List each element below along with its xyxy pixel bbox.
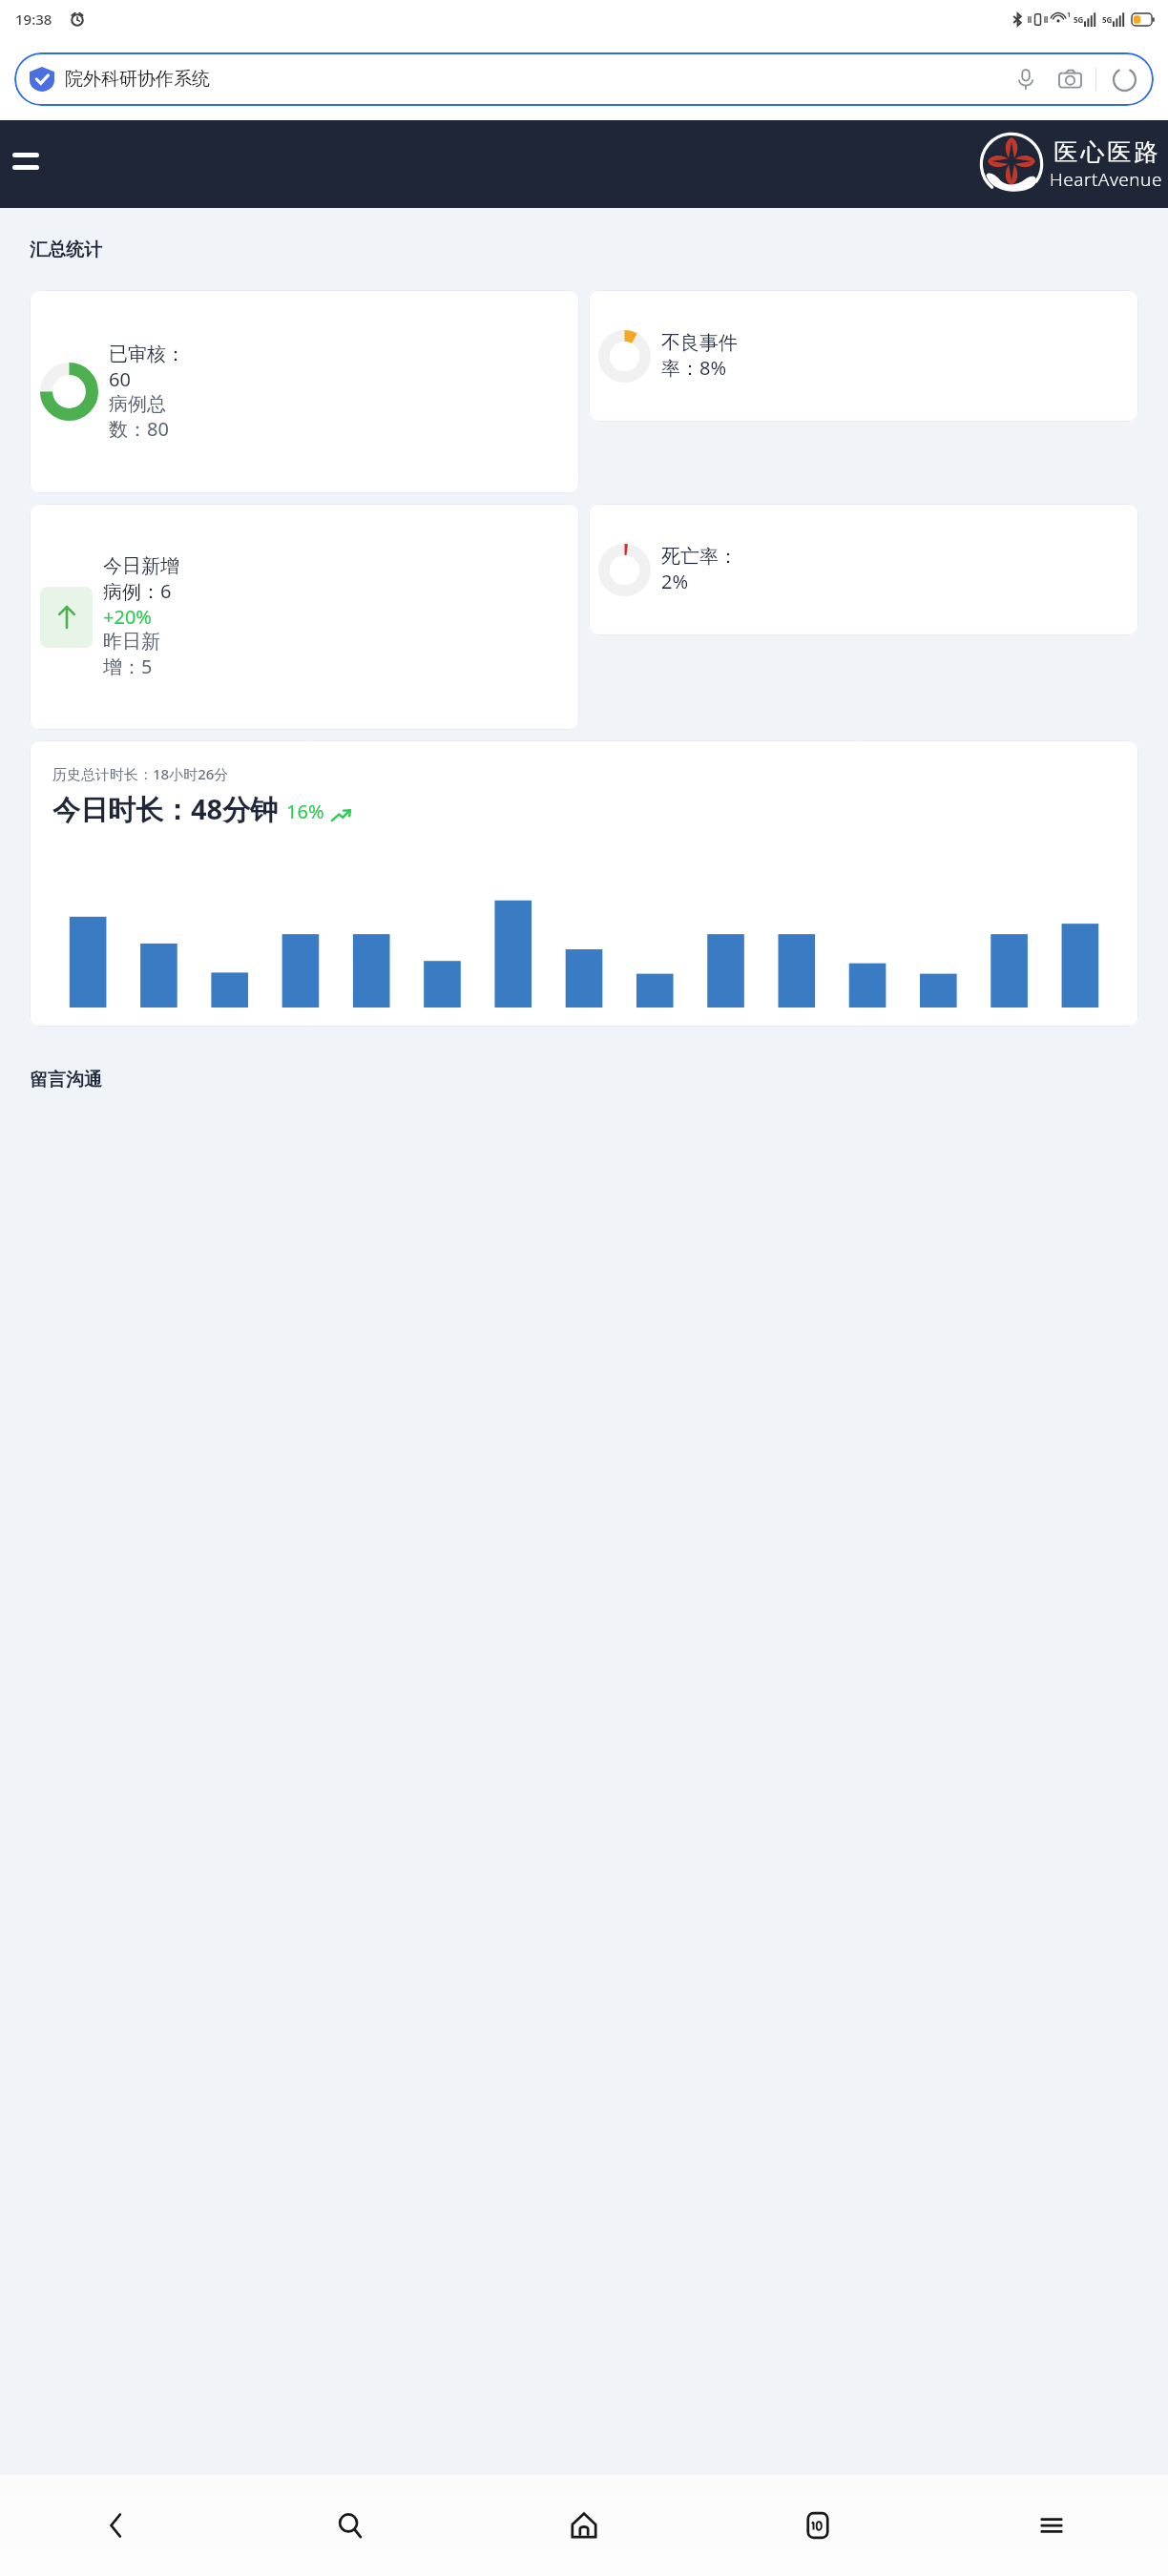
button[interactable]: Menu	[12, 149, 43, 179]
button[interactable]: 不良事件	[589, 290, 1138, 422]
staticText: 留言沟通	[30, 1069, 102, 1091]
staticText: 16%	[286, 799, 324, 824]
staticText: 5G	[1102, 14, 1113, 25]
staticText: 历史总计时长：18小时26分	[52, 764, 229, 783]
staticText: 2%	[661, 569, 689, 594]
button[interactable]: 院外科研协作系统	[14, 52, 1154, 106]
staticText: 增：5	[103, 654, 153, 679]
button[interactable]: Back	[0, 2475, 233, 2576]
staticText: 1	[1067, 10, 1072, 20]
button[interactable]: 今日新增	[30, 504, 579, 730]
staticText: 今日时长：48分钟	[52, 790, 279, 828]
staticText: +20%	[103, 604, 152, 630]
staticText: 病例：6	[103, 578, 172, 604]
staticText: 19:38	[15, 10, 52, 29]
button[interactable]: Search	[233, 2475, 467, 2576]
staticText: 不良事件	[661, 331, 738, 355]
staticText: HeartAvenue	[1050, 167, 1162, 192]
button[interactable]: 死亡率：	[589, 504, 1138, 635]
button[interactable]: Voice search	[1012, 65, 1040, 93]
button[interactable]: Refresh	[1110, 65, 1138, 93]
button[interactable]: Home	[467, 2475, 700, 2576]
staticText: 院外科研协作系统	[65, 68, 210, 91]
staticText: 60	[109, 366, 131, 392]
staticText: 汇总统计	[30, 239, 102, 261]
staticText: 死亡率：	[661, 545, 738, 569]
button[interactable]: Tabs	[700, 2475, 934, 2576]
button[interactable]: 历史总计时长：18小时26分	[30, 740, 1138, 1027]
staticText: 5G	[1074, 14, 1084, 25]
staticText: 数：80	[109, 416, 169, 442]
staticText: 昨日新	[103, 630, 160, 654]
button[interactable]: Menu	[934, 2475, 1168, 2576]
staticText: 医心医路	[1053, 137, 1159, 167]
staticText: 已审核：	[109, 343, 185, 366]
staticText: 病例总	[109, 392, 166, 416]
button[interactable]: Camera search	[1055, 65, 1084, 93]
button[interactable]: 已审核：	[30, 290, 579, 493]
staticText: 率：8%	[661, 355, 727, 381]
staticText: 今日新增	[103, 554, 179, 578]
